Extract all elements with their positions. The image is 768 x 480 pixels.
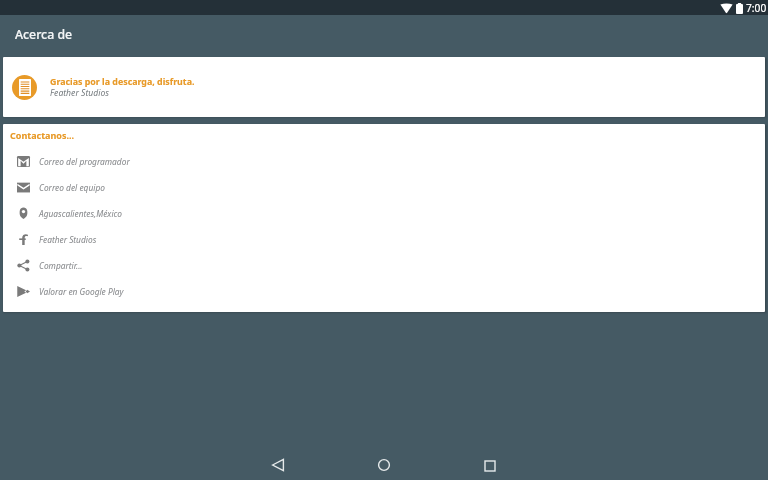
button[interactable]: Correo del equipo (3, 174, 765, 200)
button[interactable]: Aguascalientes,México (3, 200, 765, 226)
staticText: Correo del equipo (39, 182, 105, 193)
staticText: Gracias por la descarga, disfruta. (50, 76, 195, 88)
staticText: Feather Studios (39, 234, 97, 245)
button[interactable]: Feather Studios (3, 226, 765, 252)
staticText: Compartir... (39, 260, 83, 271)
button[interactable]: Back (259, 446, 297, 480)
staticText: Feather Studios (50, 87, 109, 99)
button[interactable]: Compartir... (3, 252, 765, 278)
staticText: Contactanos... (10, 129, 75, 141)
button[interactable]: Home (365, 446, 403, 480)
staticText: Aguascalientes,México (39, 208, 123, 219)
button[interactable]: Gracias por la descarga, disfruta. (3, 57, 765, 117)
button[interactable]: Correo del programador (3, 148, 765, 174)
button[interactable]: Recent apps (471, 447, 509, 480)
staticText: Correo del programador (39, 156, 130, 167)
staticText: Valorar en Google Play (39, 286, 124, 297)
other: Battery (736, 3, 743, 14)
staticText: Acerca de (15, 26, 73, 43)
button[interactable]: Acerca de (0, 15, 768, 56)
other: Wi-Fi (720, 4, 733, 13)
button[interactable]: Valorar en Google Play (3, 278, 765, 304)
staticText: 7:00 (746, 1, 767, 15)
